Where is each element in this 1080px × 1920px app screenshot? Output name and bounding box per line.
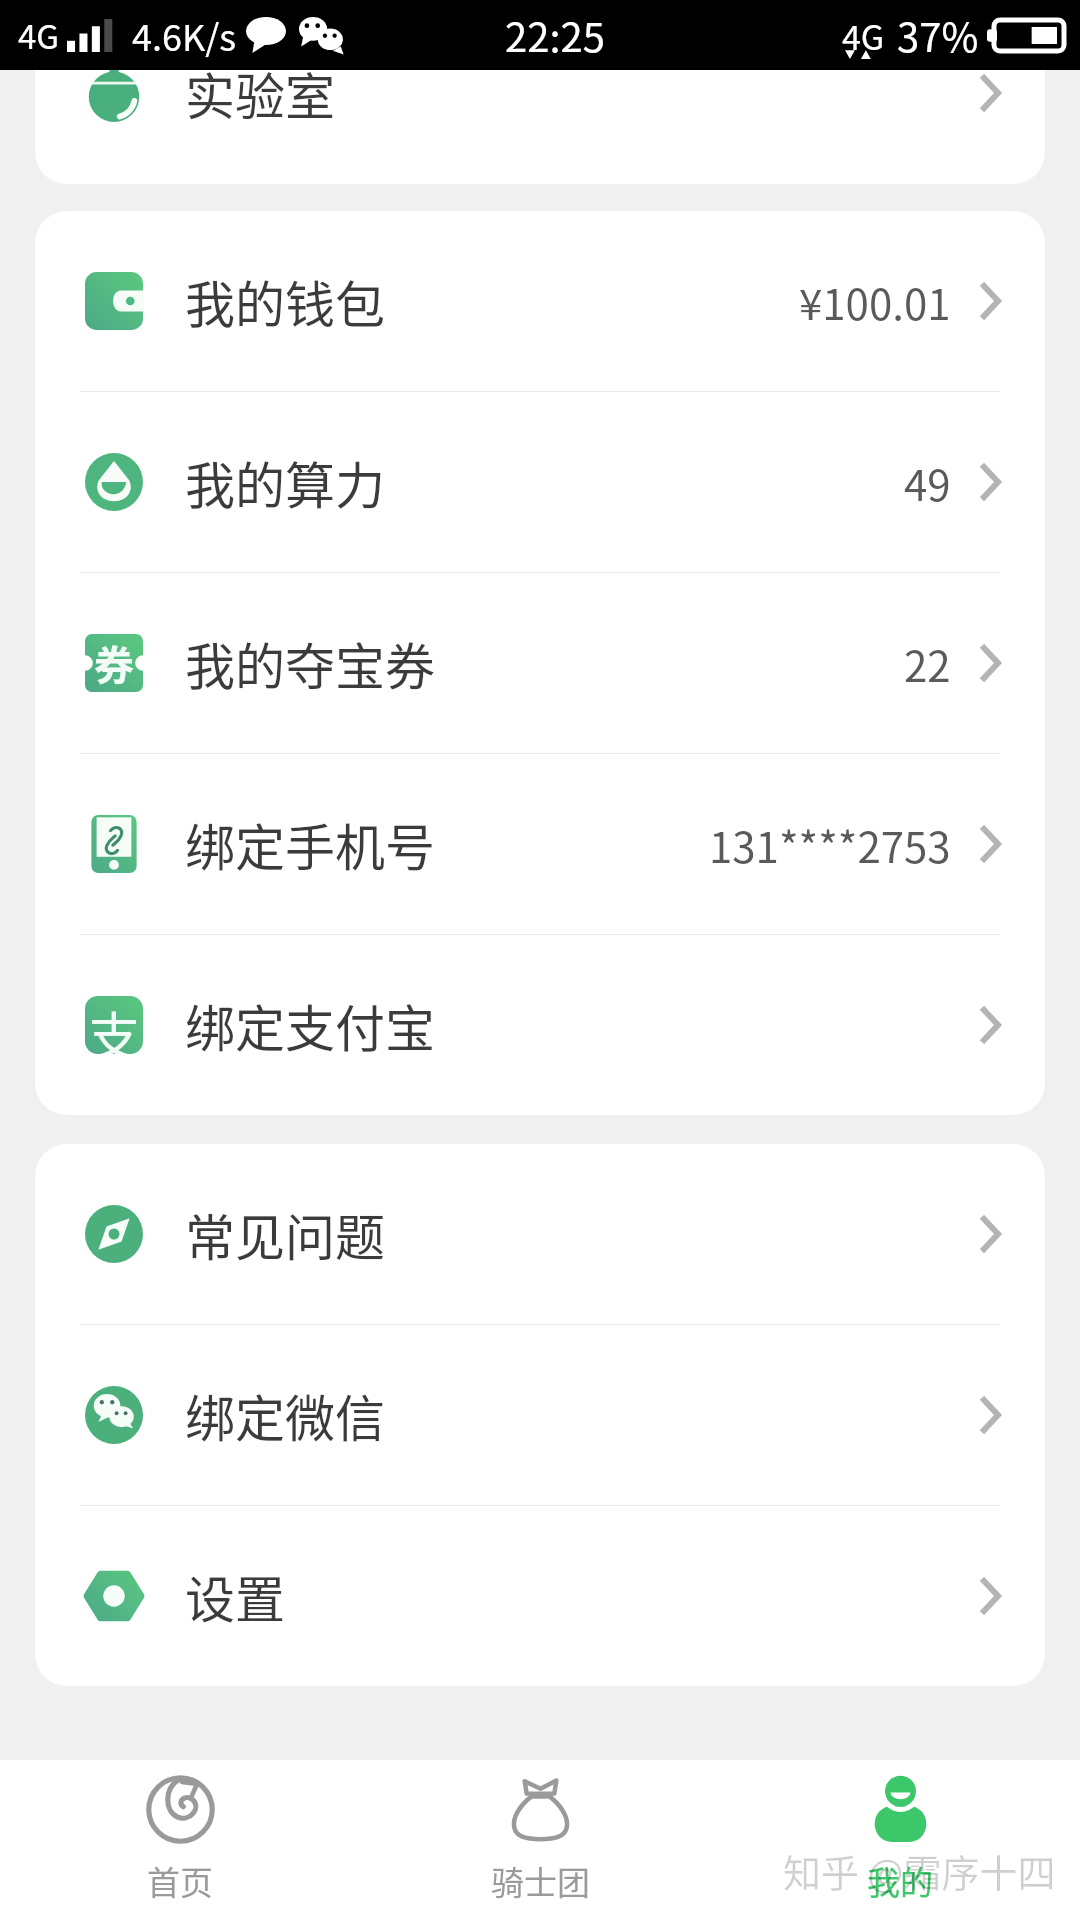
staticText: 22:25: [505, 6, 605, 64]
staticText: 我的: [867, 1857, 933, 1905]
button[interactable]: 绑定微信: [35, 1325, 1045, 1505]
staticText: 49: [904, 452, 951, 513]
staticText: 绑定微信: [185, 1379, 385, 1451]
button[interactable]: 骑士团: [360, 1760, 720, 1920]
button[interactable]: 我的算力: [35, 392, 1045, 572]
staticText: 支: [88, 996, 141, 1054]
staticText: 4G: [842, 11, 885, 60]
staticText: 绑定支付宝: [185, 989, 435, 1061]
staticText: 券: [94, 634, 134, 692]
staticText: 骑士团: [491, 1857, 590, 1905]
staticText: 我的夺宝券: [185, 627, 435, 699]
staticText: 绑定手机号: [185, 808, 435, 880]
staticText: 131****2753: [709, 814, 951, 875]
staticText: 首页: [147, 1857, 213, 1905]
button[interactable]: 绑定手机号: [35, 754, 1045, 934]
staticText: 设置: [185, 1560, 285, 1632]
staticText: 实验室: [185, 70, 335, 129]
button[interactable]: 我的: [720, 1760, 1080, 1920]
button[interactable]: 实验室: [35, 70, 1045, 150]
staticText: ¥100.01: [799, 271, 951, 332]
button[interactable]: 我的钱包: [35, 211, 1045, 391]
staticText: 常见问题: [185, 1198, 385, 1270]
button[interactable]: 首页: [0, 1760, 360, 1920]
staticText: 我的算力: [185, 446, 385, 518]
button[interactable]: 设置: [35, 1506, 1045, 1686]
staticText: 22: [904, 633, 951, 694]
button[interactable]: 绑定支付宝: [35, 935, 1045, 1115]
staticText: 4G: [18, 11, 60, 59]
staticText: 4.6K/s: [132, 9, 237, 61]
staticText: 我的钱包: [185, 265, 385, 337]
button[interactable]: 我的夺宝券: [35, 573, 1045, 753]
staticText: 37%: [897, 6, 979, 64]
staticText: 知乎 @霜序十四: [783, 1843, 1056, 1898]
button[interactable]: 常见问题: [35, 1144, 1045, 1324]
